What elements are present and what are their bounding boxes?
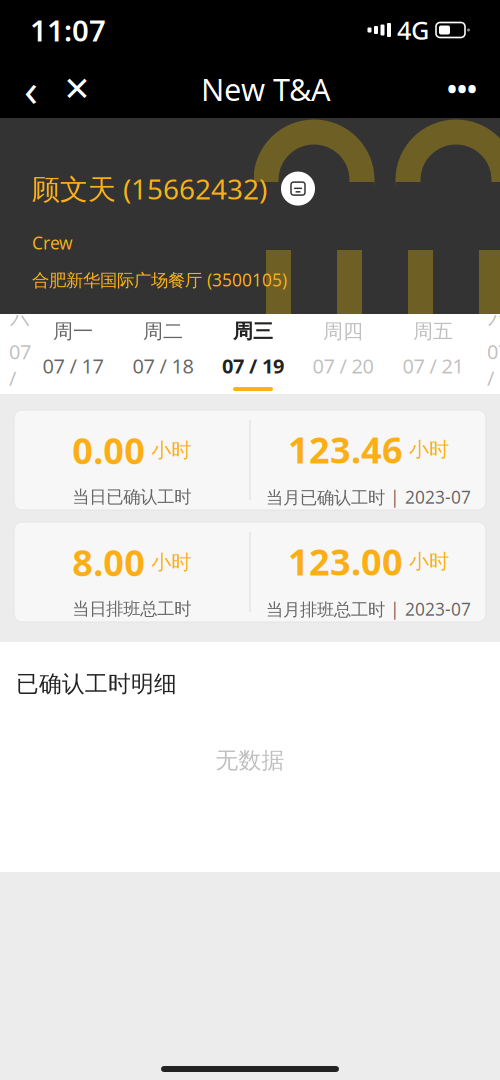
staticText: 周六 — [488, 280, 500, 329]
staticText: ‹ — [24, 59, 38, 119]
staticText: 4G — [397, 13, 429, 47]
staticText: 当月排班总工时 | 2023-07 — [266, 597, 471, 620]
staticText: 当日已确认工时 — [72, 486, 191, 508]
staticText: 07 / 21 — [402, 352, 463, 379]
staticText: 无数据 — [215, 747, 284, 774]
staticText: 07 / 18 — [132, 352, 193, 379]
staticText: 当月已确认工时 | 2023-07 — [266, 485, 471, 508]
button[interactable]: 周三 — [208, 314, 298, 394]
staticText: 07 / 17 — [42, 352, 103, 379]
staticText: 11:07 — [30, 10, 106, 49]
staticText: 合肥新华国际广场餐厅 (3500105) — [32, 268, 287, 291]
staticText: 周二 — [143, 319, 183, 343]
staticText: 07 / 16 — [9, 338, 31, 418]
staticText: 123.46 — [288, 426, 403, 473]
staticText: 小时 — [409, 437, 449, 462]
staticText: 已确认工时明细 — [16, 670, 177, 698]
button[interactable]: Details — [281, 172, 315, 206]
button[interactable]: Back — [8, 63, 54, 115]
staticText: 小时 — [151, 438, 191, 463]
button[interactable]: 周六 — [478, 314, 500, 394]
staticText: Crew — [32, 231, 73, 254]
staticText: 0.00 — [72, 426, 145, 474]
staticText: ✕ — [63, 70, 91, 108]
staticText: 周五 — [413, 319, 453, 343]
staticText: 123.00 — [288, 538, 403, 585]
staticText: 周三 — [233, 319, 273, 343]
staticText: 07 / 20 — [312, 352, 373, 379]
staticText: 周一 — [53, 319, 93, 343]
staticText: 顾文天 (15662432) — [32, 170, 267, 207]
staticText: 小时 — [151, 550, 191, 575]
staticText: New T&A — [201, 69, 331, 109]
staticText: 8.00 — [72, 538, 145, 586]
staticText: 周六 — [10, 280, 30, 329]
button[interactable]: More options — [432, 63, 492, 115]
staticText: 小时 — [409, 549, 449, 574]
button[interactable]: 周一 — [28, 314, 118, 394]
button[interactable]: Close — [54, 63, 100, 115]
button[interactable]: 周二 — [118, 314, 208, 394]
button[interactable]: 周四 — [298, 314, 388, 394]
button[interactable]: 周六 — [0, 314, 28, 394]
staticText: 07 / 22 — [487, 338, 500, 418]
staticText: 07 / 19 — [222, 352, 284, 379]
button[interactable]: 周五 — [388, 314, 478, 394]
staticText: 周四 — [323, 319, 363, 343]
staticText: ••• — [447, 71, 477, 107]
staticText: 当日排班总工时 — [72, 598, 191, 620]
